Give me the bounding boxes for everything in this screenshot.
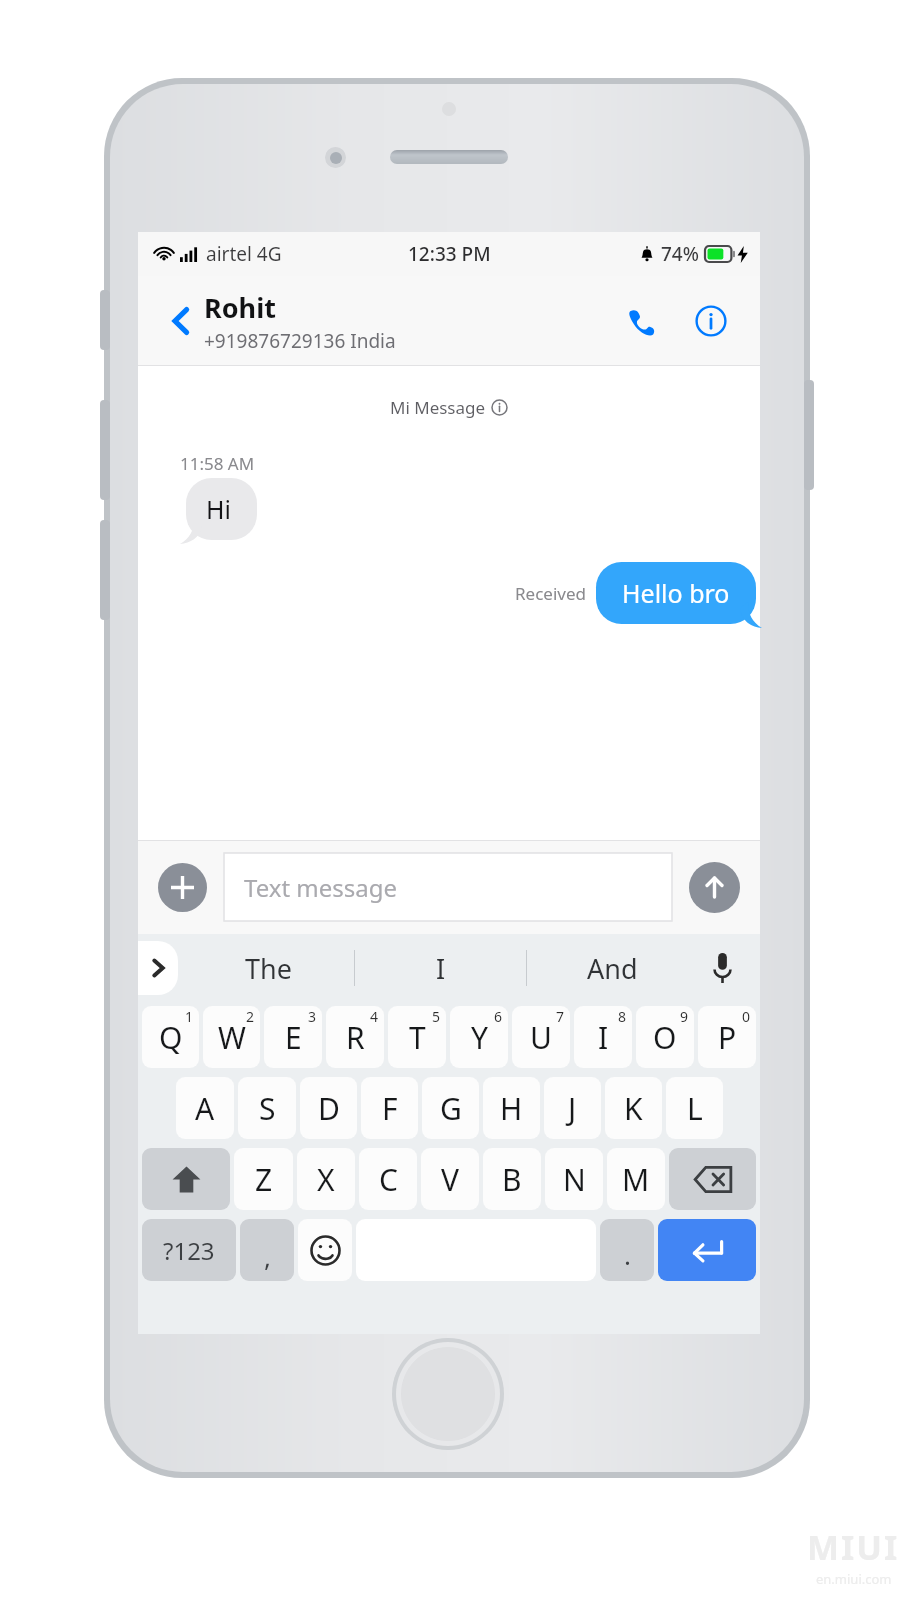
button[interactable]: P — [698, 1006, 756, 1068]
staticText: Hello bro — [622, 576, 730, 610]
button[interactable]: S — [238, 1077, 296, 1139]
button[interactable]: K — [605, 1077, 662, 1139]
button[interactable]: Enter — [658, 1219, 756, 1281]
staticText: 6 — [494, 1007, 503, 1026]
staticText: 3 — [308, 1007, 317, 1026]
staticText: 1 — [185, 1007, 194, 1026]
staticText: D — [318, 1088, 340, 1129]
staticText: 74% — [661, 241, 699, 267]
button[interactable]: D — [300, 1077, 357, 1139]
staticText: X — [317, 1159, 335, 1200]
staticText: N — [563, 1159, 586, 1200]
button[interactable]: Text message — [224, 853, 672, 921]
button[interactable]: W — [203, 1006, 260, 1068]
button[interactable]: Expand toolbar — [138, 941, 178, 995]
staticText: Hi — [206, 492, 231, 526]
staticText: 9 — [680, 1007, 689, 1026]
staticText: G — [440, 1088, 462, 1129]
staticText: The — [245, 950, 292, 987]
staticText: 5 — [432, 1007, 441, 1026]
staticText: +919876729136 India — [204, 328, 396, 354]
button[interactable]: N — [545, 1148, 603, 1210]
button[interactable]: Y — [450, 1006, 508, 1068]
button[interactable]: O — [636, 1006, 694, 1068]
staticText: 2 — [246, 1007, 255, 1026]
staticText: Text message — [244, 871, 398, 904]
staticText: E — [285, 1017, 302, 1058]
staticText: I — [598, 1017, 609, 1058]
button[interactable]: F — [361, 1077, 418, 1139]
button[interactable]: Send — [689, 862, 740, 913]
button[interactable]: X — [297, 1148, 355, 1210]
button[interactable]: J — [544, 1077, 601, 1139]
button[interactable]: Z — [234, 1148, 293, 1210]
staticText: 4 — [370, 1007, 379, 1026]
button[interactable]: I — [355, 934, 526, 1002]
staticText: K — [624, 1088, 643, 1129]
button[interactable]: Backspace — [669, 1148, 756, 1210]
button[interactable]: R — [326, 1006, 384, 1068]
staticText: And — [587, 950, 638, 987]
button[interactable]: A — [176, 1077, 234, 1139]
staticText: J — [568, 1088, 577, 1129]
staticText: P — [718, 1017, 737, 1058]
button[interactable]: T — [388, 1006, 446, 1068]
staticText: . — [624, 1237, 631, 1272]
staticText: 8 — [618, 1007, 627, 1026]
staticText: 11:58 AM — [180, 452, 255, 475]
button[interactable]: The — [182, 934, 354, 1002]
staticText: Rohit — [204, 289, 276, 326]
button[interactable]: U — [512, 1006, 570, 1068]
staticText: Received — [515, 582, 586, 605]
button[interactable]: Back — [164, 304, 198, 338]
staticText: O — [653, 1017, 677, 1058]
staticText: F — [382, 1088, 398, 1129]
staticText: A — [195, 1088, 215, 1129]
button[interactable]: Info — [688, 298, 734, 344]
staticText: T — [409, 1017, 426, 1058]
staticText: V — [441, 1159, 459, 1200]
staticText: C — [379, 1159, 398, 1200]
button[interactable]: Call — [618, 298, 664, 344]
button[interactable]: V — [421, 1148, 479, 1210]
button[interactable]: B — [483, 1148, 541, 1210]
staticText: en.miui.com — [816, 1570, 892, 1588]
button[interactable]: . — [600, 1219, 654, 1281]
staticText: , — [264, 1239, 271, 1274]
button[interactable]: , — [240, 1219, 294, 1281]
staticText: 0 — [742, 1007, 751, 1026]
button[interactable]: M — [607, 1148, 665, 1210]
staticText: Z — [255, 1159, 273, 1200]
button[interactable]: Q — [142, 1006, 199, 1068]
staticText: B — [502, 1159, 522, 1200]
button[interactable]: I — [574, 1006, 632, 1068]
staticText: airtel 4G — [206, 241, 282, 267]
button[interactable]: Attach — [158, 863, 207, 912]
staticText: H — [500, 1088, 523, 1129]
button[interactable]: And — [527, 934, 698, 1002]
staticText: MIUI — [807, 1524, 900, 1570]
staticText: W — [218, 1017, 246, 1058]
button[interactable]: Shift — [142, 1148, 230, 1210]
staticText: L — [687, 1088, 703, 1129]
button[interactable]: E — [264, 1006, 322, 1068]
button[interactable]: Emoji — [298, 1219, 352, 1281]
staticText: I — [436, 950, 446, 987]
button[interactable]: Voice input — [698, 934, 746, 1002]
button[interactable]: C — [359, 1148, 417, 1210]
button[interactable]: ?123 — [142, 1219, 236, 1281]
staticText: Y — [471, 1017, 488, 1058]
button[interactable]: H — [483, 1077, 540, 1139]
staticText: 12:33 PM — [408, 241, 491, 267]
staticText: Q — [159, 1017, 183, 1058]
staticText: ?123 — [163, 1234, 215, 1267]
staticText: S — [259, 1088, 276, 1129]
staticText: 7 — [556, 1007, 565, 1026]
button[interactable]: G — [422, 1077, 479, 1139]
staticText: M — [622, 1159, 650, 1200]
staticText: R — [346, 1017, 365, 1058]
button[interactable]: L — [666, 1077, 723, 1139]
staticText: Mi Message — [390, 396, 486, 419]
staticText: U — [530, 1017, 552, 1058]
